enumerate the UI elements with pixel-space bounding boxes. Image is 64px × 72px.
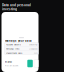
button[interactable]: Personal info: [4, 46, 38, 50]
staticText: Account details: [6, 43, 21, 46]
button[interactable]: Investment data: [4, 51, 38, 55]
button[interactable]: Teal accent: [27, 60, 33, 67]
staticText: investing: [2, 7, 17, 11]
staticText: Manage your data: [5, 39, 32, 43]
staticText: On: [34, 51, 37, 54]
button[interactable]: Account details: [4, 42, 38, 46]
staticText: Pick an accent: [4, 64, 18, 67]
staticText: Theme: [4, 60, 11, 63]
staticText: Checking: [29, 43, 37, 46]
staticText: Personal info: [6, 47, 19, 50]
staticText: Updated: [29, 47, 37, 50]
staticText: Investment data: [6, 51, 22, 54]
staticText: Data and personal: [2, 3, 31, 7]
